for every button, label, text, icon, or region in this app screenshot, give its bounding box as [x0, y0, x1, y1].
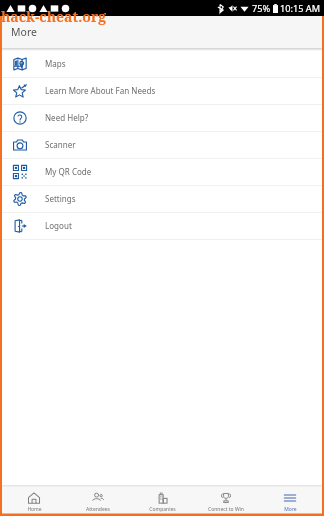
staticText: 75% [252, 2, 271, 15]
button[interactable]: Connect to Win [194, 492, 258, 513]
button[interactable]: Scanner [0, 132, 324, 159]
button[interactable]: Companies [130, 492, 194, 513]
staticText: Attendees [86, 506, 110, 513]
staticText: Settings [45, 193, 76, 204]
staticText: Learn More About Fan Needs [45, 85, 156, 96]
staticText: Maps [45, 58, 66, 69]
button[interactable]: Settings [0, 186, 324, 213]
button[interactable]: Need Help? [0, 105, 324, 132]
button[interactable]: Home [2, 492, 66, 513]
staticText: Companies [149, 506, 176, 513]
button[interactable]: Attendees [66, 492, 130, 513]
button[interactable]: Logout [0, 213, 324, 240]
staticText: Home [27, 506, 42, 513]
staticText: Logout [45, 220, 72, 231]
staticText: Need Help? [45, 112, 89, 123]
button[interactable]: My QR Code [0, 159, 324, 186]
staticText: Scanner [45, 139, 76, 150]
button[interactable]: More [258, 492, 322, 513]
staticText: hack-cheat.org [1, 7, 107, 26]
staticText: 10:15 AM [280, 2, 321, 15]
button[interactable]: Maps [0, 51, 324, 78]
staticText: My QR Code [45, 166, 92, 177]
staticText: More [11, 25, 37, 39]
staticText: More [284, 506, 297, 513]
staticText: Connect to Win [208, 506, 244, 513]
button[interactable]: Learn More About Fan Needs [0, 78, 324, 105]
